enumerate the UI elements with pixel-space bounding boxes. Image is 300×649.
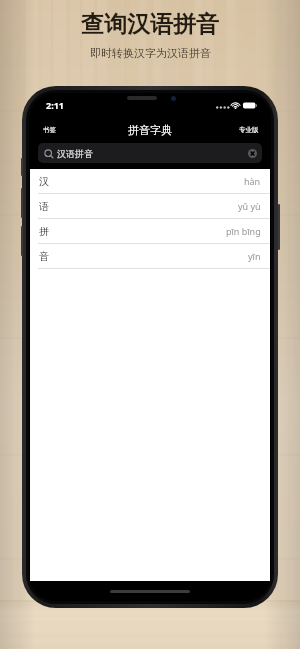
button[interactable]: 音: [30, 244, 270, 269]
staticText: pīn bīng: [226, 225, 261, 237]
staticText: 即时转换汉字为汉语拼音: [90, 46, 211, 60]
staticText: 查询汉语拼音: [81, 10, 219, 39]
button[interactable]: 拼: [30, 219, 270, 244]
button[interactable]: 语: [30, 194, 270, 219]
button[interactable]: 汉语拼音: [38, 143, 262, 163]
button[interactable]: Clear search: [248, 149, 257, 158]
staticText: 2:11: [46, 99, 64, 111]
staticText: 拼: [39, 225, 49, 238]
staticText: 音: [39, 250, 49, 263]
staticText: hàn: [244, 175, 261, 187]
staticText: 汉语拼音: [57, 148, 93, 159]
staticText: 语: [39, 200, 49, 213]
button[interactable]: 书签: [29, 121, 70, 139]
staticText: 专业版: [239, 126, 259, 134]
staticText: 书签: [43, 126, 56, 134]
staticText: 汉: [39, 175, 49, 188]
staticText: yīn: [248, 250, 261, 262]
staticText: 拼音字典: [128, 123, 172, 137]
button[interactable]: 专业版: [227, 121, 271, 139]
staticText: yǔ yù: [238, 200, 261, 212]
button[interactable]: 汉: [30, 169, 270, 194]
